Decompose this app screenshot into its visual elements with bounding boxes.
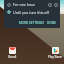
button[interactable]: Play Store (52, 47, 59, 54)
button[interactable]: Increase (54, 3, 58, 7)
staticText: DONE (47, 21, 57, 25)
staticText: MORE SETTINGS (19, 21, 44, 25)
staticText: Until you turn this off (13, 10, 50, 15)
staticText: For one hour (13, 2, 35, 7)
button[interactable]: For one hour (4, 0, 60, 9)
button[interactable]: Decrease (48, 3, 52, 7)
staticText: Gmail (8, 55, 17, 59)
staticText: Play Store (48, 55, 62, 59)
button[interactable]: DONE (46, 20, 58, 26)
button[interactable]: Until you turn this off (4, 9, 60, 15)
button[interactable]: Gmail (9, 47, 16, 54)
button[interactable]: MORE SETTINGS (18, 20, 45, 26)
